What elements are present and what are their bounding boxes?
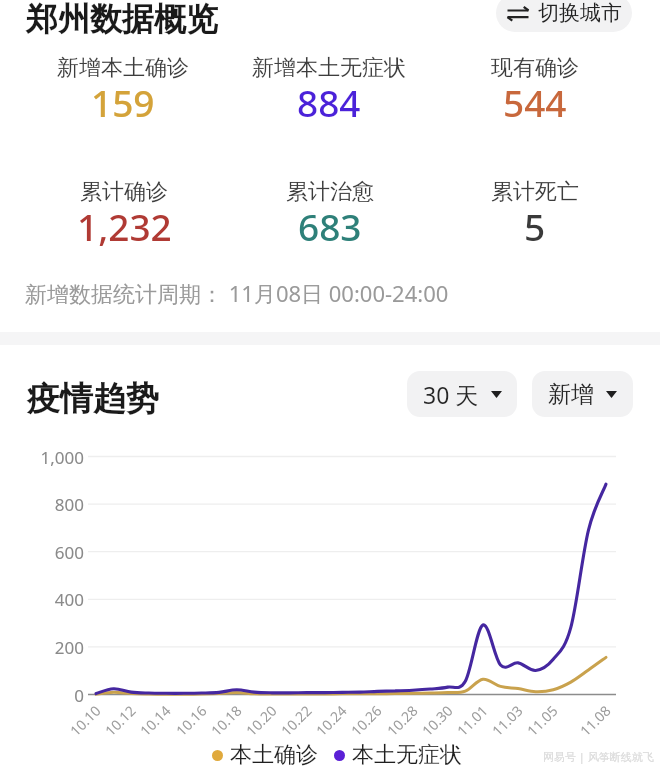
staticText: 现有确诊	[491, 54, 579, 82]
staticText: 10.18	[198, 693, 254, 748]
staticText: 切换城市	[538, 0, 622, 26]
button[interactable]: 累计治愈	[220, 178, 440, 256]
button[interactable]: 30 天	[407, 371, 517, 417]
staticText: 400	[22, 588, 84, 611]
staticText: 10.12	[92, 693, 148, 748]
staticText: 544	[503, 77, 567, 127]
staticText: 10.24	[303, 693, 359, 748]
staticText: 10.28	[374, 693, 430, 748]
button[interactable]: 疫情趋势	[27, 378, 159, 420]
button[interactable]: 切换城市	[496, 0, 632, 32]
staticText: 0	[22, 684, 84, 707]
button[interactable]: 新增本土确诊	[13, 54, 233, 132]
staticText: 新增本土无症状	[252, 54, 406, 82]
button[interactable]: 新增本土无症状	[219, 54, 439, 132]
staticText: 159	[91, 77, 155, 127]
staticText: 11.05	[514, 693, 570, 748]
staticText: 683	[298, 201, 362, 251]
staticText: 10.30	[409, 693, 465, 748]
staticText: 10.26	[338, 693, 394, 748]
staticText: 累计确诊	[80, 178, 168, 206]
staticText: 200	[22, 636, 84, 659]
button[interactable]: 累计死亡	[425, 178, 645, 256]
staticText: 10.10	[57, 693, 113, 748]
staticText: 新增	[548, 380, 594, 409]
staticText: 新增本土确诊	[57, 54, 189, 82]
button[interactable]: 新增	[532, 371, 633, 417]
staticText: 本土确诊	[230, 741, 318, 769]
staticText: 30 天	[423, 379, 479, 410]
staticText: 11.01	[444, 693, 500, 748]
button[interactable]: 现有确诊	[425, 54, 645, 132]
staticText: 10.20	[233, 693, 289, 748]
staticText: 1,232	[77, 201, 172, 251]
button[interactable]: 本土确诊	[212, 741, 462, 769]
staticText: 600	[22, 541, 84, 564]
staticText: 累计治愈	[286, 178, 374, 206]
staticText: 10.14	[127, 693, 183, 748]
button[interactable]: 累计确诊	[14, 178, 234, 256]
staticText: 10.22	[268, 693, 324, 748]
staticText: 网易号 | 风筝断线就飞	[543, 749, 654, 764]
button[interactable]: 郑州数据概览	[26, 0, 218, 39]
staticText: 新增数据统计周期： 11月08日 00:00-24:00	[25, 278, 449, 308]
staticText: 11.08	[567, 693, 623, 748]
staticText: 11.03	[479, 693, 535, 748]
staticText: 累计死亡	[491, 178, 579, 206]
staticText: 10.16	[163, 693, 219, 748]
staticText: 5	[524, 201, 546, 251]
staticText: 1,000	[22, 446, 84, 469]
staticText: 884	[297, 77, 361, 127]
staticText: 800	[22, 493, 84, 516]
staticText: 本土无症状	[352, 741, 462, 769]
